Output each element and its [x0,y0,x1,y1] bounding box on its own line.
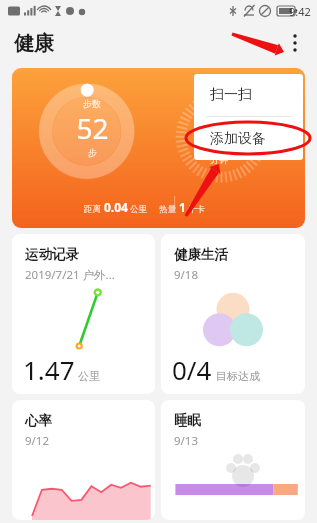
button[interactable]: 健康生活 [161,234,305,394]
button[interactable]: 睡眠 [161,400,305,520]
staticText: 心率 [25,412,52,429]
staticText: 添加设备 [210,130,266,148]
staticText: 健康 [14,31,54,56]
staticText: 0/4 [172,352,212,387]
staticText: 分钟 [210,154,228,165]
staticText: 2019/7/21 户外... [25,267,115,283]
button[interactable]: More options [279,27,311,59]
staticText: 健康生活 [174,246,228,263]
staticText: 步数 [83,98,101,109]
staticText: 目标达成 [216,369,260,383]
button[interactable]: 心率 [12,400,155,520]
button[interactable]: 扫一扫 [194,74,303,116]
staticText: 热量 [159,204,176,215]
staticText: 0.04 [104,199,128,215]
button[interactable]: 步数 [12,68,305,228]
staticText: 运动记录 [25,246,79,263]
staticText: 1.47 [23,352,75,387]
staticText: 步 [88,147,97,158]
staticText: 公里 [78,369,100,383]
staticText: 公里 [130,204,147,215]
staticText: 睡眠 [174,412,201,429]
staticText: 1 [179,199,186,215]
button[interactable]: 运动记录 [12,234,155,394]
staticText: 千卡 [188,204,205,215]
staticText: 9/13 [174,433,199,449]
staticText: 9:42 [289,4,311,19]
staticText: 扫一扫 [210,86,252,104]
staticText: 9/18 [174,267,199,283]
button[interactable]: 添加设备 [194,117,303,160]
staticText: 52 [76,109,109,147]
staticText: 9/12 [25,433,50,449]
staticText: 距离 [84,204,101,215]
